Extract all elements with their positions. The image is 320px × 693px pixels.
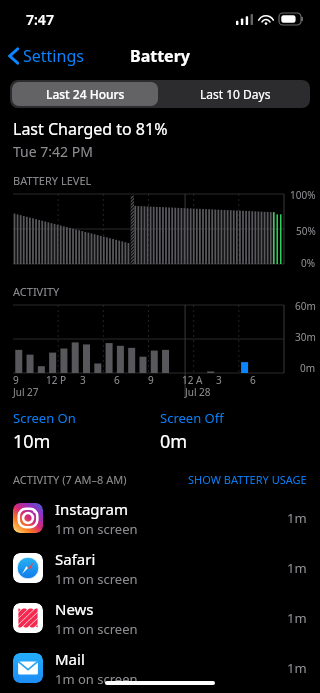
staticText: 12 A [182, 373, 203, 387]
staticText: Screen Off [160, 409, 224, 427]
staticText: 50% [296, 224, 316, 238]
button[interactable]: SHOW BATTERY USAGE [188, 472, 307, 487]
staticText: 1m on screen [55, 620, 138, 638]
staticText: 10m [13, 429, 51, 454]
staticText: 1m [287, 559, 307, 577]
button[interactable]: News [0, 593, 320, 643]
staticText: Jul 27 [13, 385, 39, 399]
staticText: ACTIVITY (7 AM–8 AM) [13, 472, 127, 487]
staticText: BATTERY LEVEL [13, 173, 92, 188]
button[interactable]: Last 10 Days [160, 80, 310, 108]
button[interactable]: Last 24 Hours [12, 82, 158, 106]
button[interactable]: Safari [0, 543, 320, 593]
button[interactable]: Settings [0, 41, 92, 71]
staticText: News [55, 599, 94, 619]
staticText: Last 10 Days [200, 86, 271, 102]
staticText: 0m [300, 361, 316, 375]
staticText: 6 [250, 373, 256, 387]
staticText: 3 [216, 373, 222, 387]
staticText: Last 24 Hours [46, 86, 125, 102]
staticText: Jul 28 [185, 385, 211, 399]
staticText: 1m on screen [55, 570, 138, 588]
staticText: 7:47 [26, 10, 54, 29]
staticText: 1m on screen [55, 520, 138, 538]
staticText: Safari [55, 549, 96, 569]
staticText: 3 [80, 373, 86, 387]
staticText: Battery [130, 45, 190, 67]
staticText: 12 P [46, 373, 67, 387]
staticText: Instagram [55, 499, 128, 519]
staticText: Mail [55, 649, 85, 669]
staticText: Settings [23, 45, 84, 67]
staticText: 1m [287, 509, 307, 527]
staticText: Last Charged to 81% [13, 118, 168, 140]
staticText: 0% [301, 256, 316, 270]
staticText: SHOW BATTERY USAGE [188, 472, 307, 487]
staticText: Screen On [13, 409, 76, 427]
staticText: 100% [290, 188, 316, 202]
staticText: Tue 7:42 PM [13, 142, 93, 161]
staticText: 9 [13, 373, 19, 387]
button[interactable]: Mail [0, 643, 320, 693]
staticText: ACTIVITY [13, 284, 60, 299]
staticText: 0m [160, 429, 188, 454]
staticText: 60m [295, 299, 316, 313]
staticText: 30m [295, 330, 316, 344]
staticText: 6 [114, 373, 120, 387]
button[interactable]: Instagram [0, 493, 320, 543]
staticText: 1m [287, 659, 307, 677]
staticText: 1m on screen [55, 670, 138, 688]
staticText: 1m [287, 609, 307, 627]
staticText: 9 [148, 373, 154, 387]
